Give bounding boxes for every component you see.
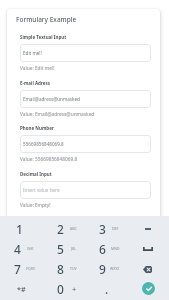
staticText: TUV <box>70 266 77 271</box>
button[interactable]: Edit me!! <box>20 44 151 62</box>
staticText: JKL <box>71 246 76 251</box>
button[interactable]: 5 <box>43 239 85 259</box>
button[interactable]: 55669856848069.8 <box>20 135 151 153</box>
staticText: E-mail Adress <box>20 80 50 86</box>
button[interactable]: 2 <box>43 219 85 239</box>
button[interactable]: *# <box>0 279 43 299</box>
button[interactable]: 8 <box>43 259 85 279</box>
staticText: 5 <box>57 241 64 257</box>
staticText: Value: Empty! <box>20 202 51 209</box>
button[interactable]: Email@adress@unmasked <box>20 90 151 108</box>
button[interactable]: 3 <box>85 219 127 239</box>
staticText: 0 <box>57 281 64 297</box>
staticText: Phone Number <box>20 125 54 131</box>
button[interactable]: . <box>85 279 127 299</box>
staticText: Value: Edit me!! <box>20 65 55 72</box>
staticText: 4 <box>14 241 21 257</box>
button[interactable]: Backspace <box>127 259 169 279</box>
button[interactable]: Space <box>127 239 169 259</box>
staticText: 55669856848069.8 <box>23 141 64 147</box>
staticText: GHI <box>27 246 34 251</box>
button[interactable]: Insert value here <box>20 181 151 199</box>
button[interactable]: 1 <box>0 219 43 239</box>
button[interactable]: 9 <box>85 259 127 279</box>
staticText: ABC <box>70 226 77 231</box>
staticText: Value: Email@adress@unmasked <box>20 111 95 118</box>
staticText: DEF <box>112 226 119 231</box>
button[interactable]: 0 <box>43 279 85 299</box>
staticText: . <box>105 281 109 297</box>
button[interactable]: 4 <box>0 239 43 259</box>
staticText: Formulary Example <box>16 15 77 24</box>
staticText: 6 <box>99 241 106 257</box>
staticText: Insert value here <box>23 187 60 193</box>
staticText: 3 <box>99 221 106 237</box>
staticText: MNO <box>111 246 120 251</box>
staticText: + <box>72 284 77 294</box>
staticText: Value: 55669856848069.8 <box>20 156 78 163</box>
button[interactable]: 6 <box>85 239 127 259</box>
staticText: 8 <box>57 261 64 277</box>
button[interactable]: 7 <box>0 259 43 279</box>
button[interactable]: Confirm <box>127 279 169 299</box>
staticText: 2 <box>57 221 64 237</box>
staticText: WXYZ <box>110 266 120 271</box>
staticText: 7 <box>14 261 21 277</box>
staticText: Simple Textual Input <box>20 34 67 40</box>
staticText: Edit me!! <box>23 50 42 56</box>
staticText: Email@adress@unmasked <box>23 96 80 102</box>
staticText: 9 <box>99 261 106 277</box>
staticText: 1 <box>16 221 23 237</box>
staticText: PQRS <box>26 266 35 271</box>
button[interactable]: Minus <box>127 219 169 239</box>
staticText: *# <box>17 284 26 294</box>
staticText: Decimal Input <box>20 171 52 177</box>
